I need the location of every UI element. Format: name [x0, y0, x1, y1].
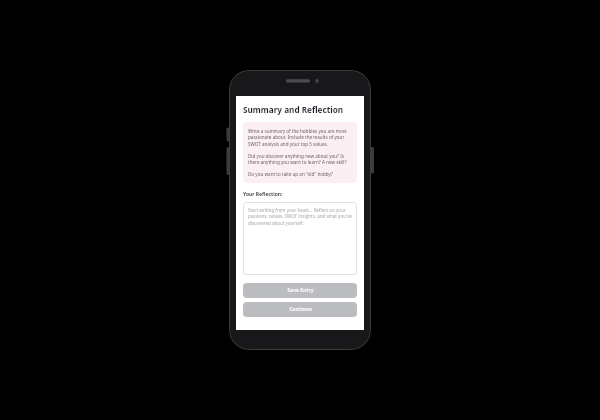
button[interactable]: Start writing from your heart... Reflect… — [243, 202, 357, 275]
staticText: Save Entry — [287, 287, 314, 294]
staticText: Summary and Reflection — [243, 104, 344, 115]
button[interactable]: Save Entry — [243, 283, 357, 298]
staticText: Write a summary of the hobbies you are m… — [248, 128, 352, 148]
staticText: Do you want to take up an "old" hobby? — [248, 171, 333, 177]
staticText: Continue — [289, 306, 312, 313]
staticText: Start writing from your heart... Reflect… — [248, 207, 352, 227]
button[interactable]: Continue — [243, 302, 357, 317]
staticText: Your Reflection: — [243, 191, 283, 198]
staticText: Did you discover anything new about you?… — [248, 153, 352, 166]
